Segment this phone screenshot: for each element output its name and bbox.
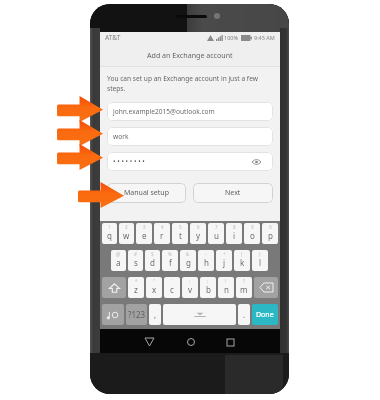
staticText: " — [153, 278, 155, 284]
staticText: ?123 — [128, 309, 146, 320]
staticText: + — [223, 251, 226, 257]
button[interactable]: % — [162, 250, 178, 271]
button[interactable]: ; — [200, 277, 216, 298]
button[interactable]: Manual setup — [107, 183, 186, 203]
staticText: : — [189, 278, 191, 284]
staticText: Add an Exchange account — [147, 50, 233, 60]
staticText: x — [152, 284, 157, 295]
staticText: b — [206, 284, 211, 295]
staticText: d — [150, 257, 155, 268]
button[interactable]: + — [216, 250, 232, 271]
button[interactable]: Backspace — [254, 277, 278, 298]
staticText: a — [116, 257, 121, 268]
button[interactable]: , — [149, 304, 161, 325]
button[interactable]: " — [146, 277, 162, 298]
button[interactable]: Shift — [102, 277, 126, 298]
staticText: p — [268, 230, 273, 241]
staticText: * — [135, 278, 138, 284]
staticText: $ — [151, 251, 154, 257]
staticText: 5 — [179, 224, 182, 230]
staticText: . — [243, 309, 246, 320]
button[interactable]: Space — [163, 304, 236, 325]
button[interactable]: ! — [218, 277, 234, 298]
other: Pointer arrow — [57, 144, 103, 170]
staticText: r — [160, 230, 164, 241]
staticText: 9 — [251, 224, 254, 230]
button[interactable]: 0 — [262, 223, 278, 244]
staticText: e — [142, 230, 147, 241]
button[interactable]: Home — [180, 331, 202, 353]
button[interactable]: . — [238, 304, 250, 325]
staticText: Next — [225, 188, 241, 198]
button[interactable]: Done — [252, 304, 278, 325]
button[interactable]: 1 — [102, 223, 117, 244]
button[interactable]: 9 — [244, 223, 260, 244]
button[interactable]: Back — [138, 331, 160, 353]
staticText: @ — [116, 251, 121, 257]
staticText: ? — [243, 278, 245, 284]
staticText: i — [233, 230, 236, 241]
other: Pointer arrow — [57, 96, 103, 122]
button[interactable]: # — [128, 250, 143, 271]
button[interactable]: Emoji and voice input — [102, 304, 124, 325]
staticText: 100% — [224, 34, 239, 41]
button[interactable]: 7 — [208, 223, 224, 244]
button[interactable]: * — [128, 277, 144, 298]
button[interactable]: $ — [145, 250, 160, 271]
staticText: s — [134, 257, 138, 268]
staticText: Done — [256, 310, 274, 320]
staticText: l — [259, 257, 262, 268]
button[interactable]: 4 — [154, 223, 170, 244]
staticText: w — [123, 230, 130, 241]
staticText: m — [240, 284, 248, 295]
other: Pointer arrow — [57, 120, 103, 146]
button[interactable]: & — [180, 250, 196, 271]
staticText: g — [186, 257, 191, 268]
button[interactable]: ' — [164, 277, 180, 298]
staticText: ) — [259, 251, 261, 257]
staticText: work — [113, 132, 129, 141]
button[interactable]: 8 — [226, 223, 242, 244]
button[interactable]: john.example2015@outlook.com — [107, 102, 273, 121]
staticText: 1 — [108, 224, 111, 230]
button[interactable]: - — [198, 250, 214, 271]
staticText: q — [107, 230, 112, 241]
button[interactable]: ?123 — [126, 304, 147, 325]
staticText: k — [240, 257, 245, 268]
button[interactable]: : — [182, 277, 198, 298]
button[interactable]: work — [107, 127, 273, 146]
other: Pointer arrow — [78, 182, 124, 208]
button[interactable]: ( — [234, 250, 250, 271]
button[interactable]: ? — [236, 277, 252, 298]
staticText: AT&T — [105, 33, 121, 42]
staticText: j — [223, 257, 226, 268]
staticText: ; — [207, 278, 209, 284]
button[interactable]: 5 — [172, 223, 188, 244]
staticText: 8 — [233, 224, 236, 230]
button[interactable]: @ — [111, 250, 126, 271]
staticText: v — [188, 284, 193, 295]
staticText: f — [169, 257, 172, 268]
staticText: 4 — [161, 224, 164, 230]
staticText: n — [224, 284, 229, 295]
staticText: 3 — [143, 224, 146, 230]
staticText: ( — [241, 251, 243, 257]
staticText: ' — [171, 278, 173, 284]
staticText: Manual setup — [124, 188, 169, 198]
button[interactable]: Recent apps — [219, 331, 241, 353]
staticText: 9:45 AM — [254, 34, 275, 41]
staticText: 2 — [125, 224, 128, 230]
staticText: You can set up an Exchange account in ju… — [107, 74, 273, 93]
button[interactable]: 6 — [190, 223, 206, 244]
staticText: t — [179, 230, 182, 241]
button[interactable]: Next — [193, 183, 273, 203]
staticText: u — [214, 230, 219, 241]
button[interactable]: ) — [252, 250, 268, 271]
button[interactable]: • • • • • • • • — [107, 152, 273, 171]
staticText: z — [134, 284, 138, 295]
other: Show password — [252, 158, 261, 166]
staticText: h — [204, 257, 209, 268]
staticText: % — [168, 251, 172, 257]
button[interactable]: 2 — [119, 223, 134, 244]
button[interactable]: 3 — [136, 223, 152, 244]
